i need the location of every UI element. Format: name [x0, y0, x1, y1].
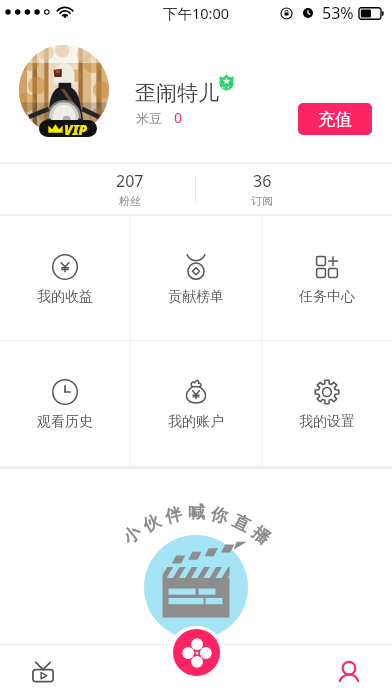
button[interactable]: 207 — [64, 164, 195, 214]
staticText: 直 — [229, 510, 254, 537]
button[interactable]: 我的设置 — [262, 341, 392, 466]
staticText: 歪闹特儿 — [135, 80, 219, 106]
staticText: 你 — [209, 503, 230, 528]
staticText: 米豆 — [136, 110, 162, 126]
button[interactable]: 36 — [196, 164, 328, 214]
staticText: 充值 — [318, 109, 352, 130]
staticText: 我的收益 — [37, 288, 93, 306]
staticText: 36 — [253, 170, 272, 192]
staticText: 播 — [248, 522, 274, 549]
button[interactable]: 贡献榜单 — [131, 216, 261, 340]
staticText: 观看历史 — [37, 413, 93, 431]
button[interactable]: 任务中心 — [262, 216, 392, 340]
staticText: 207 — [116, 170, 144, 192]
staticText: 小 — [118, 522, 145, 549]
staticText: 伙 — [139, 510, 164, 536]
staticText: 下午10:00 — [163, 3, 230, 23]
staticText: 0 — [174, 108, 183, 127]
staticText: VIP — [64, 120, 88, 137]
button[interactable]: 我的账户 — [131, 341, 261, 466]
staticText: 伴 — [163, 503, 184, 527]
button[interactable]: 直播 — [8, 644, 78, 696]
button[interactable]: 我的收益 — [0, 216, 130, 340]
staticText: 53% — [322, 2, 354, 24]
staticText: 粉丝 — [119, 194, 141, 208]
staticText: 喊 — [188, 502, 205, 523]
button[interactable]: 观看历史 — [0, 341, 130, 466]
staticText: 我的账户 — [168, 413, 224, 431]
staticText: 我的设置 — [299, 413, 355, 431]
staticText: 任务中心 — [299, 288, 355, 306]
button[interactable]: 充值 — [298, 103, 372, 135]
button[interactable]: 我的 — [314, 644, 384, 696]
staticText: 订阅 — [251, 194, 273, 208]
staticText: 贡献榜单 — [168, 288, 224, 306]
button[interactable]: 开播 — [173, 629, 220, 676]
button[interactable]: VIP — [19, 45, 109, 135]
